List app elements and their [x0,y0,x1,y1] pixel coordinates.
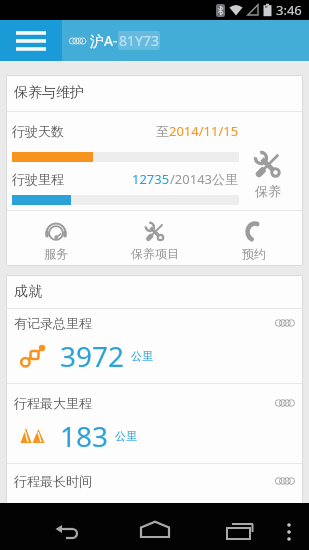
button[interactable]: 服务 [6,211,105,266]
staticText: 保养 [255,183,281,199]
button[interactable] [212,503,268,550]
button[interactable]: 保养项目 [105,211,204,266]
button[interactable] [127,503,183,550]
staticText: 3972 [60,337,125,375]
staticText: 保养项目 [131,246,179,261]
staticText: 至 [156,123,169,139]
staticText: 有记录总里程 [14,315,92,331]
button[interactable]: 沪A- [62,20,160,61]
staticText: 183 [60,417,109,455]
staticText: 保养与维护 [14,84,84,102]
button[interactable]: 行程最长时间 [14,464,295,524]
staticText: 成就 [14,283,42,301]
staticText: 12735 [132,170,170,188]
button[interactable]: 有记录总里程 [14,309,295,383]
staticText: 3:46 [276,1,302,19]
button[interactable] [277,503,301,550]
staticText: 2014/11/15 [169,122,239,140]
staticText: 行驶天数 [12,123,64,139]
staticText: 行程最大里程 [14,395,92,411]
button[interactable]: 保养 [239,112,296,210]
button[interactable]: 预约 [204,211,303,266]
staticText: 81Y73 [119,31,159,50]
button[interactable] [0,20,62,61]
staticText: 预约 [242,246,266,261]
staticText: 公里 [115,429,137,443]
staticText: /20143公里 [170,170,239,188]
button[interactable] [40,503,96,550]
staticText: 行驶里程 [12,171,64,187]
staticText: 公里 [131,349,153,363]
button[interactable]: 行程最大里程 [14,384,295,463]
staticText: 服务 [44,246,68,261]
staticText: 沪A- [90,31,118,50]
staticText: 行程最长时间 [14,473,92,489]
